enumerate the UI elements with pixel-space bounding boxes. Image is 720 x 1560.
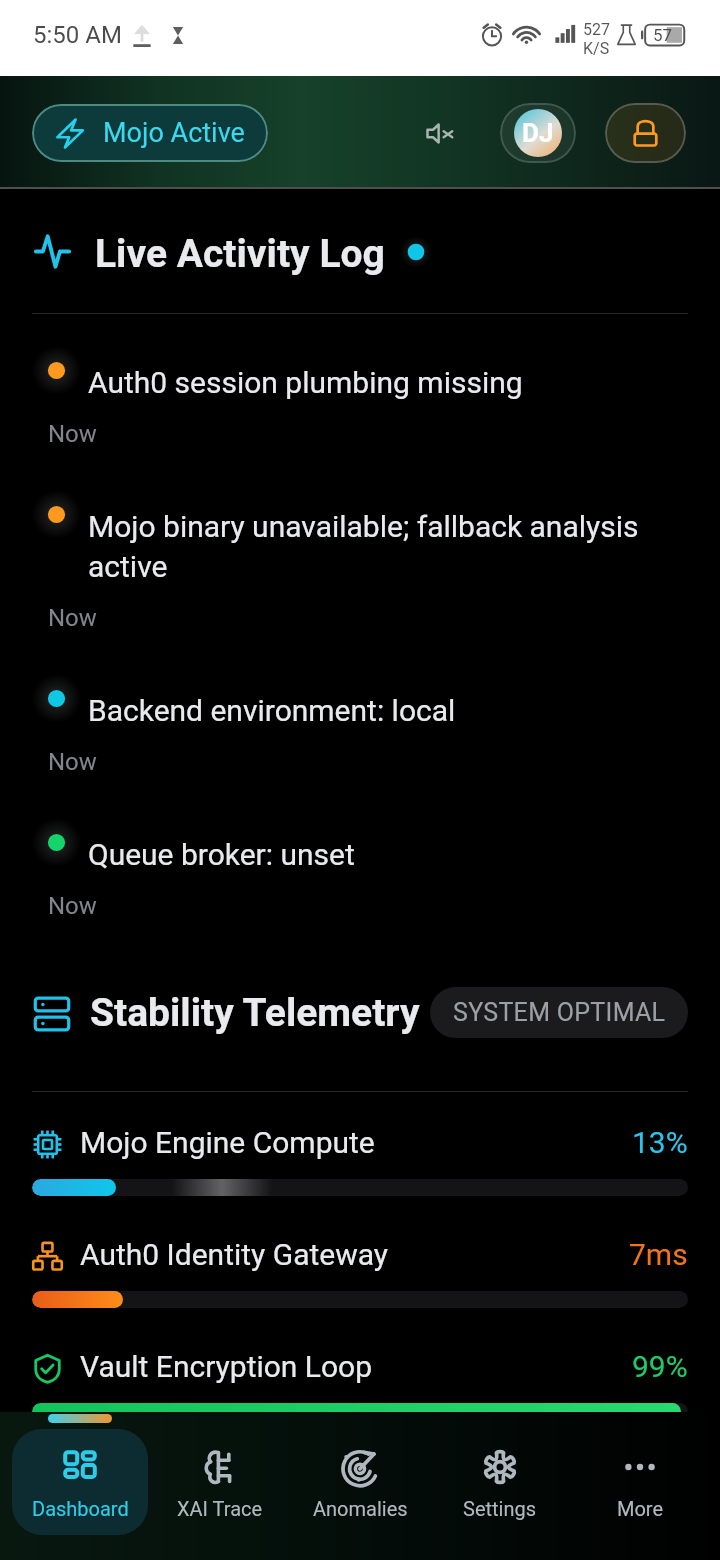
button[interactable]: Mojo binary unavailable; fallback analys… xyxy=(0,490,720,618)
staticText: Now xyxy=(48,604,97,632)
button[interactable]: Auth0 session plumbing missing xyxy=(0,346,720,436)
button[interactable]: XAI Trace xyxy=(152,1429,288,1535)
staticText: Auth0 session plumbing missing xyxy=(88,365,663,400)
staticText: K/S xyxy=(583,39,610,58)
button[interactable]: SYSTEM OPTIMAL xyxy=(430,987,688,1038)
staticText: 5:50 AM xyxy=(33,21,122,49)
staticText: More xyxy=(617,1497,664,1520)
staticText: Vault Encryption Loop xyxy=(80,1349,373,1384)
staticText: Now xyxy=(48,748,97,776)
button[interactable]: Anomalies xyxy=(292,1429,428,1535)
button[interactable]: Backend environment: local xyxy=(0,674,720,764)
staticText: Auth0 Identity Gateway xyxy=(80,1237,389,1272)
staticText: SYSTEM OPTIMAL xyxy=(453,998,666,1027)
staticText: 7ms xyxy=(629,1237,688,1272)
button[interactable]: Profile xyxy=(500,103,576,163)
button[interactable]: Dashboard xyxy=(12,1429,148,1535)
staticText: Backend environment: local xyxy=(88,693,663,728)
staticText: Live Activity Log xyxy=(95,231,385,277)
staticText: 13% xyxy=(632,1125,688,1160)
button[interactable]: Queue broker: unset xyxy=(0,818,720,908)
button[interactable]: Lock xyxy=(605,103,686,163)
button[interactable]: Vault Encryption Loop xyxy=(0,1353,720,1443)
staticText: Dashboard xyxy=(32,1497,129,1520)
button[interactable]: More xyxy=(572,1429,708,1535)
staticText: 57 xyxy=(653,25,673,45)
staticText: XAI Trace xyxy=(177,1497,263,1520)
staticText: DJ xyxy=(522,118,554,148)
staticText: Mojo Active xyxy=(103,117,245,149)
staticText: Mojo binary unavailable; fallback analys… xyxy=(88,509,663,584)
staticText: Now xyxy=(48,420,97,448)
staticText: Queue broker: unset xyxy=(88,837,663,872)
staticText: Anomalies xyxy=(313,1497,408,1520)
button[interactable]: Mute xyxy=(412,105,468,161)
staticText: 527 xyxy=(583,20,610,39)
button[interactable]: Settings xyxy=(432,1429,568,1535)
staticText: Stability Telemetry xyxy=(90,990,420,1036)
button[interactable]: Mojo Engine Compute xyxy=(0,1129,720,1219)
staticText: 99% xyxy=(632,1349,688,1384)
staticText: Mojo Engine Compute xyxy=(80,1125,375,1160)
button[interactable]: Mojo Active xyxy=(32,104,268,162)
button[interactable]: Auth0 Identity Gateway xyxy=(0,1241,720,1331)
staticText: Now xyxy=(48,892,97,920)
staticText: Settings xyxy=(463,1497,537,1520)
